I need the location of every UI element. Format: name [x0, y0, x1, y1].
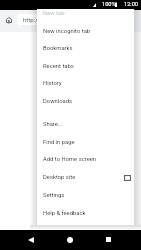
button[interactable]: History [37, 74, 134, 92]
button[interactable]: Find in page [37, 133, 134, 151]
button[interactable]: New incognito tab [37, 22, 134, 40]
staticText: 12:00 [124, 1, 138, 8]
staticText: http:/ [23, 16, 38, 23]
staticText: Help & feedback [43, 210, 86, 217]
staticText: Desktop site [43, 174, 76, 181]
staticText: Share… [43, 121, 62, 128]
button[interactable]: Help & feedback [37, 204, 134, 222]
staticText: Recent tabs [43, 63, 74, 70]
staticText: History [43, 80, 62, 87]
staticText: Downloads [43, 98, 73, 105]
button[interactable]: Home [1, 12, 17, 28]
button[interactable]: Settings [37, 186, 134, 204]
button[interactable]: Home [67, 237, 73, 243]
staticText: New tab [43, 10, 65, 17]
staticText: Find in page [43, 139, 75, 146]
button[interactable]: Bookmarks [37, 39, 134, 57]
button[interactable]: http:/ [17, 14, 127, 25]
button[interactable]: Add to Home screen [37, 150, 134, 168]
button[interactable]: Desktop site [37, 168, 134, 186]
button[interactable]: Recent tabs [37, 57, 134, 75]
button[interactable]: Downloads [37, 92, 134, 110]
staticText: 100% [102, 1, 116, 8]
staticText: Bookmarks [43, 45, 73, 52]
button[interactable]: Share… [37, 115, 134, 133]
staticText: Settings [43, 192, 65, 199]
staticText: Add to Home screen [43, 156, 97, 163]
button[interactable]: New tab [37, 4, 134, 22]
button[interactable]: Back [28, 237, 34, 243]
staticText: New incognito tab [43, 28, 91, 35]
